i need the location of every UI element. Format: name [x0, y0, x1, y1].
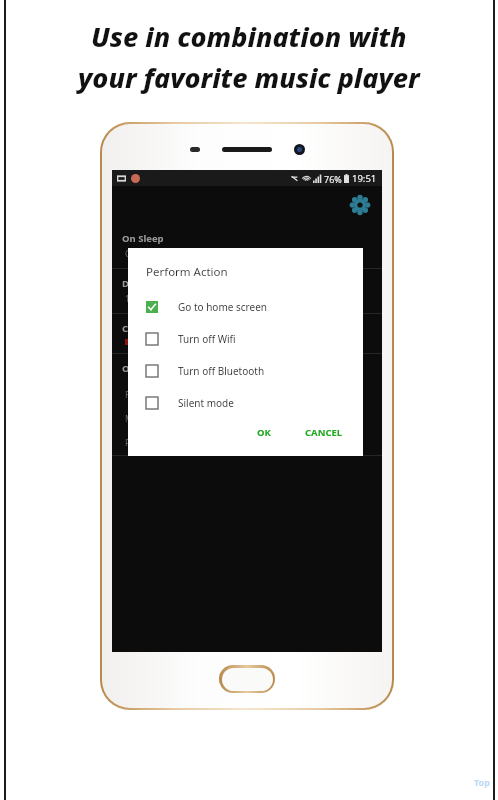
staticText: M	[125, 413, 133, 425]
staticText: 76%	[324, 173, 342, 185]
staticText: Top	[474, 776, 490, 788]
staticText: OK	[257, 426, 271, 439]
staticText: Use in combination with	[91, 18, 407, 55]
button[interactable]: OK	[247, 422, 281, 443]
staticText: Other	[122, 362, 150, 375]
button[interactable]: Turn off Wifi	[146, 323, 349, 355]
button[interactable]: Settings	[350, 195, 370, 215]
button[interactable]: Default Extend Time	[112, 269, 382, 313]
button[interactable]: Other	[112, 354, 382, 383]
staticText: Turn off Wifi	[178, 332, 236, 346]
staticText: 10 minutes	[125, 293, 170, 305]
button[interactable]: On Sleep	[112, 224, 382, 268]
staticText: Go to home screen	[178, 300, 267, 314]
staticText: On Sleep	[122, 232, 164, 245]
button[interactable]: Go to home screen	[146, 291, 349, 323]
button[interactable]: M	[112, 407, 382, 431]
staticText: your favorite music player	[78, 59, 420, 96]
button[interactable]: CANCEL	[299, 422, 349, 443]
staticText: Silent mode	[178, 396, 234, 410]
button[interactable]: R	[112, 383, 382, 407]
staticText: CANCEL	[305, 426, 343, 439]
staticText: Go to home screen,	[125, 248, 203, 260]
button[interactable]: Silent mode	[146, 387, 349, 419]
staticText: R	[125, 389, 131, 401]
staticText: P	[125, 437, 131, 449]
staticText: Default Extend Time	[122, 277, 219, 290]
staticText: Perform Action	[146, 264, 228, 280]
button[interactable]: Charging	[112, 314, 382, 353]
staticText: Turn off Bluetooth	[178, 364, 265, 378]
button[interactable]: P	[112, 431, 382, 455]
staticText: Charging	[122, 322, 166, 335]
button[interactable]: Turn off Bluetooth	[146, 355, 349, 387]
button[interactable]: Home	[219, 665, 275, 693]
staticText: 19:51	[352, 172, 377, 185]
